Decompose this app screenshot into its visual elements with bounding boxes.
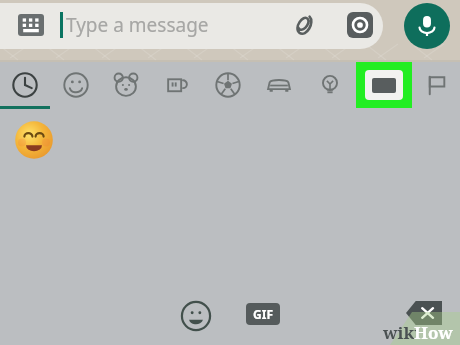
button[interactable]: Smileys <box>54 62 98 108</box>
button[interactable]: Travel <box>257 62 301 108</box>
button[interactable]: Camera <box>347 12 373 38</box>
button[interactable]: Animals <box>104 62 148 108</box>
button[interactable]: GIF <box>246 303 280 325</box>
staticText: How <box>414 321 453 344</box>
button[interactable]: Voice message <box>404 3 450 49</box>
button[interactable]: Food <box>155 62 199 108</box>
button[interactable]: Smiling face emoji <box>14 120 54 160</box>
staticText: Type a message <box>66 12 209 38</box>
button[interactable]: Recent <box>3 62 47 108</box>
button[interactable]: Keyboard <box>18 14 44 36</box>
button[interactable]: Symbols <box>362 62 406 108</box>
button[interactable]: Emoji <box>180 300 212 332</box>
staticText: wiki <box>383 321 421 344</box>
button[interactable] <box>0 3 383 49</box>
button[interactable]: Attach <box>288 10 318 40</box>
button[interactable]: Backspace <box>406 301 442 325</box>
button[interactable]: Activities <box>206 62 250 108</box>
button[interactable]: Flags <box>414 62 458 108</box>
button[interactable]: Objects <box>308 62 352 108</box>
staticText: GIF <box>253 306 273 322</box>
